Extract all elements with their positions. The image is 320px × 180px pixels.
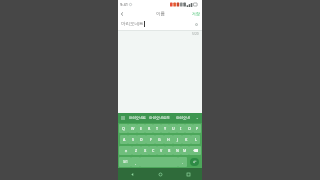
button[interactable]: More suggestions [194, 115, 200, 121]
button[interactable]: . [178, 157, 187, 167]
button[interactable]: E [137, 124, 145, 133]
staticText: N [176, 148, 179, 153]
button[interactable]: D [137, 135, 146, 144]
staticText: T [156, 126, 159, 131]
button[interactable]: Recents [174, 168, 202, 180]
button[interactable]: P [193, 124, 201, 133]
button[interactable]: S [128, 135, 137, 144]
button[interactable]: Home [146, 168, 174, 180]
button[interactable]: Keyboard options [120, 115, 126, 121]
button[interactable]: T [153, 124, 161, 133]
button[interactable]: F [146, 135, 155, 144]
staticText: C [152, 148, 155, 153]
staticText: 저장 [192, 11, 200, 16]
button[interactable]: C [149, 146, 157, 155]
button[interactable]: V [157, 146, 165, 155]
staticText: 마리오네트 [121, 21, 144, 27]
button[interactable] [119, 146, 132, 155]
button[interactable]: H [164, 135, 173, 144]
staticText: D [140, 137, 143, 142]
button[interactable]: Y [161, 124, 169, 133]
button[interactable]: N [173, 146, 181, 155]
button[interactable]: 마리오네 [171, 113, 194, 123]
button[interactable] [189, 146, 201, 155]
staticText: K [185, 137, 188, 142]
button[interactable]: Clear text [193, 21, 199, 27]
button[interactable]: Back [118, 10, 126, 18]
staticText: 5/20 [192, 32, 199, 36]
staticText: I [180, 126, 182, 131]
button[interactable]: 마리오네트의 [148, 113, 171, 123]
staticText: B [168, 148, 171, 153]
staticText: 9:41 [120, 2, 128, 7]
button[interactable]: Z [132, 146, 141, 155]
staticText: G [158, 137, 161, 142]
staticText: Y [164, 126, 167, 131]
button[interactable]: J [173, 135, 182, 144]
staticText: !#1 [123, 160, 128, 164]
button[interactable]: I [177, 124, 185, 133]
staticText: H [167, 137, 170, 142]
button[interactable]: K [182, 135, 191, 144]
button[interactable]: L [191, 135, 200, 144]
button[interactable]: U [169, 124, 177, 133]
staticText: , [135, 160, 136, 165]
staticText: J [177, 137, 179, 142]
button[interactable]: R [145, 124, 153, 133]
staticText: R [148, 126, 151, 131]
staticText: . [182, 160, 183, 165]
staticText: V [160, 148, 163, 153]
staticText: 마리오네 [176, 116, 190, 120]
button[interactable]: Enter [188, 158, 200, 166]
staticText: E [140, 126, 143, 131]
button[interactable]: Back [118, 168, 146, 180]
staticText: W [131, 126, 135, 131]
button[interactable]: W [128, 124, 137, 133]
staticText: Q [122, 126, 125, 131]
staticText: Z [135, 148, 138, 153]
button[interactable]: Q [119, 124, 128, 133]
staticText: 이름 [156, 11, 165, 17]
button[interactable]: G [155, 135, 164, 144]
button[interactable]: 마리오네트 [118, 18, 202, 30]
button[interactable]: X [141, 146, 149, 155]
button[interactable]: M [181, 146, 189, 155]
staticText: U [172, 126, 175, 131]
staticText: M [183, 148, 187, 153]
staticText: S [132, 137, 134, 142]
staticText: 마리오네트 [129, 116, 146, 120]
button[interactable]: 저장 [190, 11, 202, 16]
button[interactable]: !#1 [119, 157, 131, 167]
staticText: X [144, 148, 147, 153]
staticText: 마리오네트의 [149, 116, 170, 120]
staticText: F [150, 137, 152, 142]
staticText: A [123, 137, 126, 142]
button[interactable]: 마리오네트 [126, 113, 148, 123]
staticText: L [195, 137, 197, 142]
button[interactable]: A [120, 135, 128, 144]
staticText: P [196, 126, 199, 131]
button[interactable]: , [131, 157, 140, 167]
button[interactable]: B [165, 146, 173, 155]
staticText: O [188, 126, 191, 131]
button[interactable]: O [185, 124, 193, 133]
